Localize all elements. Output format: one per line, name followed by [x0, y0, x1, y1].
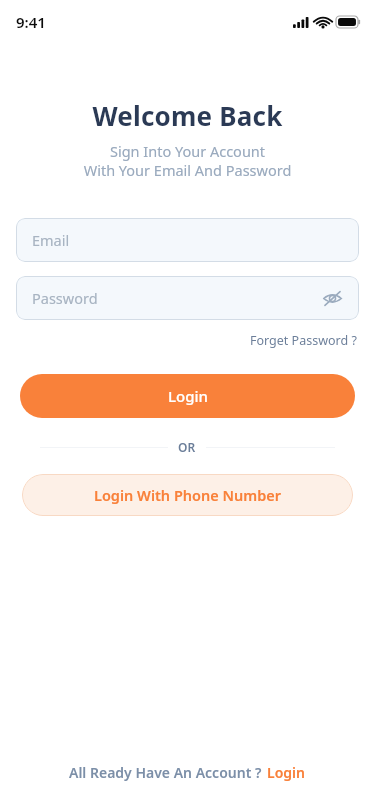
staticText: Sign Into Your Account With Your Email A… [0, 141, 375, 180]
button[interactable]: Email [16, 218, 359, 262]
staticText: Login With Phone Number [94, 485, 282, 505]
staticText: Password [32, 288, 98, 308]
staticText: Welcome Back [0, 98, 375, 133]
staticText: All Ready Have An Account ? [69, 763, 262, 782]
staticText: Login [168, 386, 208, 406]
button[interactable]: Forget Password ? [248, 330, 359, 351]
button[interactable]: Login [20, 374, 355, 418]
button[interactable]: Password [16, 276, 359, 320]
staticText: Email [32, 230, 70, 250]
staticText: Forget Password ? [250, 332, 357, 349]
button[interactable]: Login [262, 761, 307, 784]
staticText: Login [267, 763, 305, 782]
button[interactable]: Login With Phone Number [22, 474, 353, 516]
staticText: OR [178, 439, 196, 455]
staticText: 9:41 [16, 12, 46, 32]
button[interactable]: Show password [317, 283, 347, 313]
